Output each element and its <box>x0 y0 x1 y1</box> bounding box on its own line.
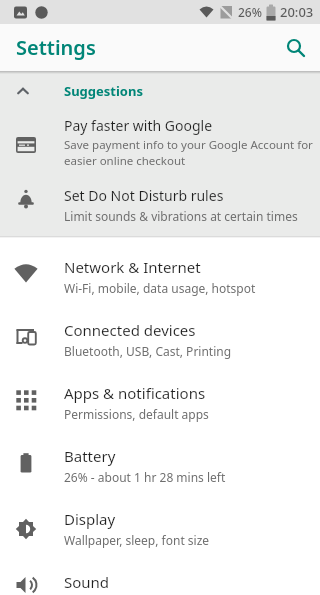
button[interactable]: Apps & notifications <box>0 373 320 436</box>
staticText: Display <box>64 509 116 529</box>
staticText: Sound <box>64 572 110 592</box>
button[interactable]: Sound <box>0 562 320 595</box>
button[interactable]: Pay faster with Google <box>0 107 320 174</box>
button[interactable]: Set Do Not Disturb rules <box>0 174 320 236</box>
staticText: Limit sounds & vibrations at certain tim… <box>64 208 298 224</box>
staticText: Bluetooth, USB, Cast, Printing <box>64 343 232 359</box>
staticText: Suggestions <box>64 82 143 100</box>
staticText: Connected devices <box>64 320 196 340</box>
staticText: 26% - about 1 hr 28 mins left <box>64 469 226 485</box>
button[interactable] <box>276 28 316 68</box>
staticText: Settings <box>16 34 96 61</box>
staticText: Battery <box>64 446 116 466</box>
button[interactable]: Network & Internet <box>0 247 320 310</box>
staticText: Wi-Fi, mobile, data usage, hotspot <box>64 280 256 296</box>
button[interactable]: Battery <box>0 436 320 499</box>
button[interactable]: Connected devices <box>0 310 320 373</box>
staticText: 20:03 <box>280 3 314 21</box>
staticText: Network & Internet <box>64 257 201 277</box>
staticText: Save payment info to your Google Account… <box>64 137 313 169</box>
staticText: Wallpaper, sleep, font size <box>64 532 210 548</box>
staticText: Permissions, default apps <box>64 406 209 422</box>
staticText: Pay faster with Google <box>64 116 213 135</box>
staticText: Apps & notifications <box>64 383 206 403</box>
staticText: 26% <box>238 4 262 20</box>
staticText: Set Do Not Disturb rules <box>64 186 224 205</box>
button[interactable]: Display <box>0 499 320 562</box>
button[interactable]: Suggestions <box>0 74 320 107</box>
